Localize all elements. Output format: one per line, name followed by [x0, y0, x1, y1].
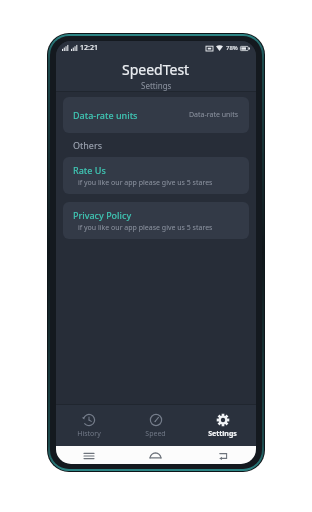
staticText: Settings	[141, 80, 172, 91]
staticText: if you like our app please give us 5 sta…	[78, 178, 213, 188]
button[interactable]: Settings	[189, 405, 256, 446]
staticText: Speed	[145, 429, 166, 439]
staticText: Data-rate units	[189, 110, 239, 120]
button[interactable]: Rate Us	[63, 157, 249, 194]
staticText: History	[77, 429, 101, 439]
staticText: 12:21	[80, 43, 98, 53]
button[interactable]: History	[56, 405, 122, 446]
staticText: if you like our app please give us 5 sta…	[78, 223, 213, 233]
staticText: Data-rate units	[73, 109, 138, 121]
staticText: 78%	[226, 44, 238, 52]
staticText: SpeedTest	[122, 60, 190, 79]
staticText: Others	[73, 139, 102, 151]
button[interactable]: Data-rate units	[63, 97, 249, 133]
staticText: Privacy Policy	[73, 209, 132, 221]
staticText: Settings	[208, 429, 237, 439]
button[interactable]: Privacy Policy	[63, 202, 249, 239]
staticText: Rate Us	[73, 164, 106, 176]
button[interactable]: Speed	[122, 405, 189, 446]
